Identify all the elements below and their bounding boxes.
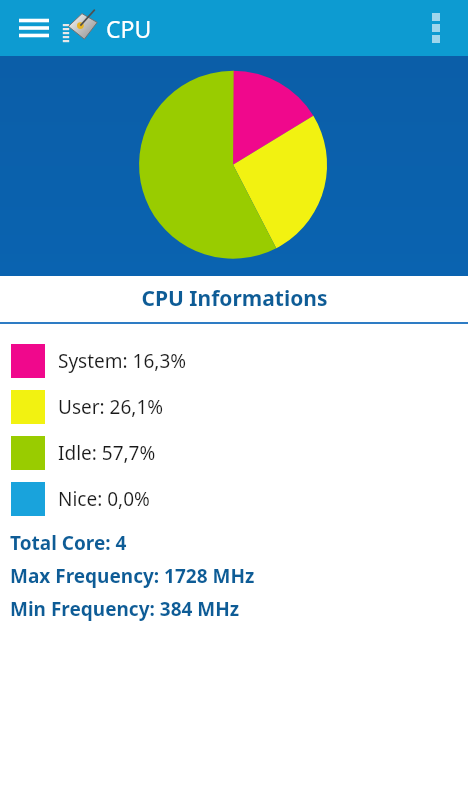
staticText: Total Core: 4 <box>10 530 127 556</box>
button[interactable]: More options <box>412 4 460 52</box>
staticText: CPU Informations <box>141 284 328 313</box>
staticText: System: 16,3% <box>58 348 187 374</box>
staticText: Max Frequency: 1728 MHz <box>10 563 255 589</box>
staticText: CPU <box>106 13 152 44</box>
staticText: Nice: 0,0% <box>58 486 150 512</box>
button[interactable]: Open navigation menu <box>8 2 60 54</box>
staticText: Idle: 57,7% <box>58 440 156 466</box>
staticText: User: 26,1% <box>58 394 164 420</box>
button[interactable]: Nice: 0,0% <box>0 476 468 522</box>
button[interactable]: User: 26,1% <box>0 384 468 430</box>
button[interactable]: System: 16,3% <box>0 338 468 384</box>
staticText: Min Frequency: 384 MHz <box>10 596 240 622</box>
button[interactable]: Idle: 57,7% <box>0 430 468 476</box>
